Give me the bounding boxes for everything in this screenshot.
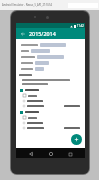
button[interactable] (19, 109, 82, 130)
button[interactable] (19, 42, 82, 48)
button[interactable]: Add (71, 134, 82, 145)
staticText: 2015/2014 (29, 30, 56, 37)
button[interactable] (19, 66, 82, 72)
button[interactable] (19, 48, 82, 54)
button[interactable] (19, 87, 82, 108)
button[interactable] (19, 54, 82, 60)
staticText: 11:42 (77, 24, 84, 28)
button[interactable]: Home (46, 149, 56, 159)
button[interactable] (19, 60, 82, 66)
button[interactable]: Back (26, 149, 36, 159)
staticText: Android Emulator - Nexus_5_API_27:5554 (2, 3, 52, 7)
button[interactable]: Back (19, 30, 26, 37)
button[interactable]: Recents (65, 149, 75, 159)
